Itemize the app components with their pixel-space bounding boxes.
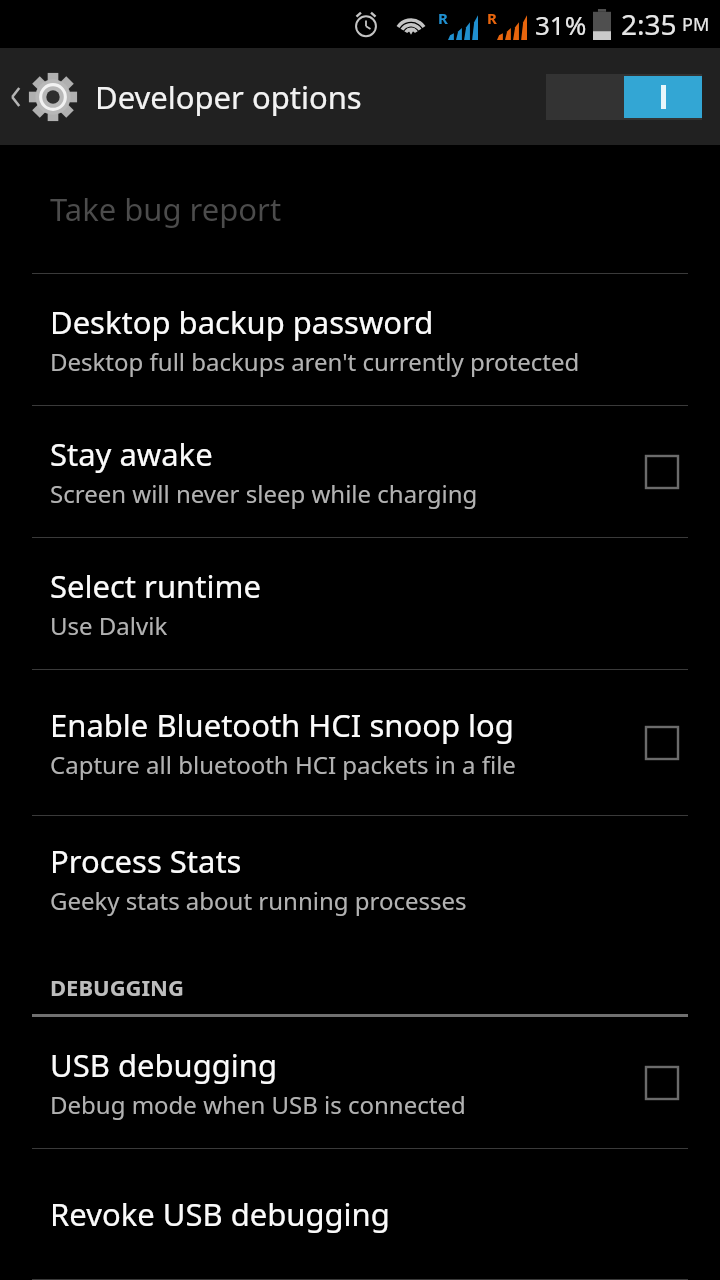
staticText: Desktop full backups aren't currently pr… <box>50 345 580 378</box>
staticText: Screen will never sleep while charging <box>50 477 478 510</box>
button[interactable]: Take bug report <box>0 145 720 273</box>
staticText: Revoke USB debugging authorizations <box>50 1193 594 1235</box>
staticText: Process Stats <box>50 840 242 882</box>
staticText: Geeky stats about running processes <box>50 884 467 917</box>
button[interactable]: Enable Bluetooth HCI snoop log <box>0 670 720 815</box>
staticText: Capture all bluetooth HCI packets in a f… <box>50 748 516 781</box>
staticText: DEBUGGING <box>50 972 184 1002</box>
button[interactable]: Developer options on/off <box>546 74 702 120</box>
staticText: R <box>438 8 448 28</box>
staticText: Enable Bluetooth HCI snoop log <box>50 704 514 746</box>
button[interactable]: Developer options <box>0 69 376 125</box>
staticText: Take bug report <box>50 188 282 230</box>
staticText: Select runtime <box>50 565 261 607</box>
staticText: Developer options <box>95 76 362 118</box>
button[interactable]: Stay awake <box>0 406 720 537</box>
staticText: Debug mode when USB is connected <box>50 1088 466 1121</box>
button[interactable]: Select runtime <box>0 538 720 669</box>
button[interactable]: USB debugging checkbox <box>646 1067 678 1099</box>
staticText: 2:35 <box>621 5 677 43</box>
button[interactable]: Desktop backup password <box>0 274 720 405</box>
staticText: Use Dalvik <box>50 609 168 642</box>
button[interactable]: Process Stats <box>0 816 720 940</box>
button[interactable]: Stay awake checkbox <box>646 456 678 488</box>
staticText: 31% <box>535 7 587 42</box>
button[interactable]: Enable Bluetooth HCI snoop log checkbox <box>646 727 678 759</box>
button[interactable]: Revoke USB debugging authorizations <box>0 1149 720 1279</box>
staticText: PM <box>682 12 710 37</box>
staticText: Desktop backup password <box>50 301 434 343</box>
staticText: USB debugging <box>50 1044 278 1086</box>
staticText: Stay awake <box>50 433 213 475</box>
button[interactable]: USB debugging <box>0 1017 720 1148</box>
staticText: R <box>487 8 497 28</box>
